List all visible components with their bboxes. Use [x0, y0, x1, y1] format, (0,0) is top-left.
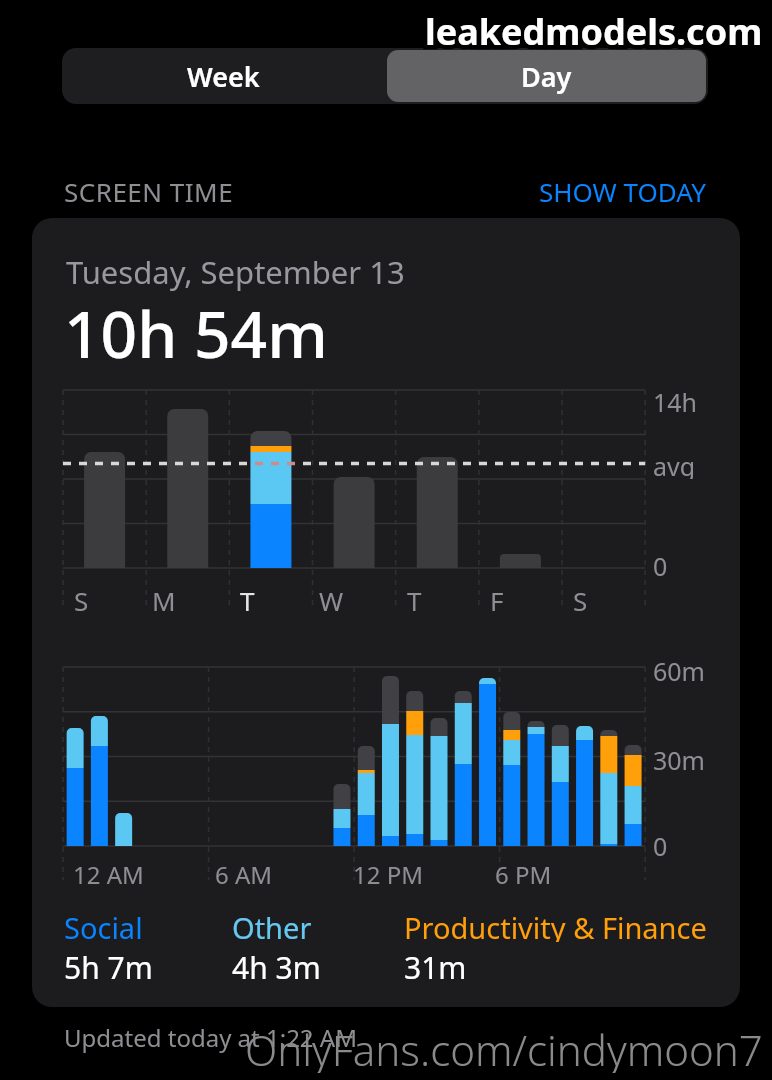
staticText: Updated today at 1:22 AM — [64, 1021, 357, 1053]
staticText: S — [573, 583, 588, 613]
staticText: Day — [521, 58, 572, 95]
staticText: 0 — [653, 549, 668, 579]
staticText: 60m — [653, 654, 705, 684]
staticText: T — [240, 583, 255, 613]
staticText: M — [152, 583, 176, 613]
staticText: W — [319, 583, 344, 613]
staticText: 14h — [653, 385, 698, 415]
staticText: Social — [64, 908, 143, 942]
button[interactable]: Week — [62, 48, 385, 104]
staticText: 4h 3m — [232, 947, 321, 981]
staticText: 30m — [653, 743, 705, 773]
button[interactable]: SHOW TODAY — [406, 174, 706, 204]
staticText: 10h 54m — [64, 290, 328, 362]
staticText: Other — [232, 908, 312, 942]
staticText: avg — [653, 449, 696, 479]
staticText: S — [74, 583, 89, 613]
staticText: leakedmodels.com — [425, 7, 763, 56]
staticText: Tuesday, September 13 — [66, 251, 405, 291]
staticText: 6 AM — [215, 858, 273, 888]
staticText: 31m — [404, 947, 467, 981]
staticText: Week — [187, 58, 260, 95]
staticText: 12 AM — [73, 858, 144, 888]
staticText: T — [407, 583, 422, 613]
staticText: SCREEN TIME — [64, 174, 234, 204]
staticText: Productivity & Finance — [404, 908, 707, 942]
staticText: F — [490, 583, 504, 613]
staticText: 12 PM — [353, 858, 423, 888]
staticText: SHOW TODAY — [539, 174, 706, 204]
staticText: 6 PM — [495, 858, 552, 888]
staticText: OnlyFans.com/cindymoon7 — [245, 1021, 763, 1073]
button[interactable]: Day — [387, 50, 706, 102]
staticText: leakedmodels.com — [425, 7, 763, 56]
staticText: 5h 7m — [64, 947, 153, 981]
staticText: 0 — [653, 829, 668, 859]
